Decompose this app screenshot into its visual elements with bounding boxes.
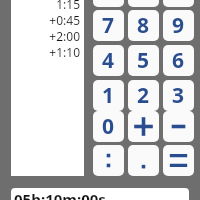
button[interactable]: 05h:10m:00s — [11, 188, 189, 200]
button[interactable]: 8 — [128, 10, 159, 41]
button[interactable]: Key — [128, 0, 159, 7]
staticText: 2 — [137, 81, 150, 110]
button[interactable]: 5 — [128, 45, 159, 76]
staticText: +1:10 — [49, 44, 80, 60]
button[interactable]: 2 — [128, 80, 159, 111]
button[interactable]: 3 — [163, 80, 194, 111]
button[interactable] — [163, 145, 194, 176]
button[interactable]: 7 — [93, 10, 124, 41]
staticText: +0:45 — [49, 12, 80, 28]
button[interactable]: Key — [163, 0, 194, 7]
staticText: 5 — [137, 46, 150, 75]
button[interactable]: 6 — [163, 45, 194, 76]
staticText: 8 — [137, 11, 150, 40]
button[interactable] — [128, 111, 159, 142]
staticText: 6 — [172, 46, 185, 75]
button[interactable] — [93, 145, 124, 176]
button[interactable]: 0 — [93, 111, 124, 142]
staticText: 1 — [102, 81, 115, 110]
button[interactable]: Key — [93, 0, 124, 7]
staticText: 7 — [102, 11, 115, 40]
staticText: +2:00 — [49, 28, 80, 44]
button[interactable] — [163, 111, 194, 142]
staticText: 0 — [102, 112, 115, 141]
staticText: 9 — [172, 11, 185, 40]
button[interactable]: 1:15 — [11, 0, 84, 176]
staticText: 05h:10m:00s — [14, 189, 106, 200]
button[interactable]: 9 — [163, 10, 194, 41]
button[interactable]: 1 — [93, 80, 124, 111]
staticText: 3 — [172, 81, 185, 110]
staticText: 4 — [102, 46, 115, 75]
button[interactable]: 4 — [93, 45, 124, 76]
button[interactable] — [128, 145, 159, 176]
staticText: 1:15 — [56, 0, 80, 12]
